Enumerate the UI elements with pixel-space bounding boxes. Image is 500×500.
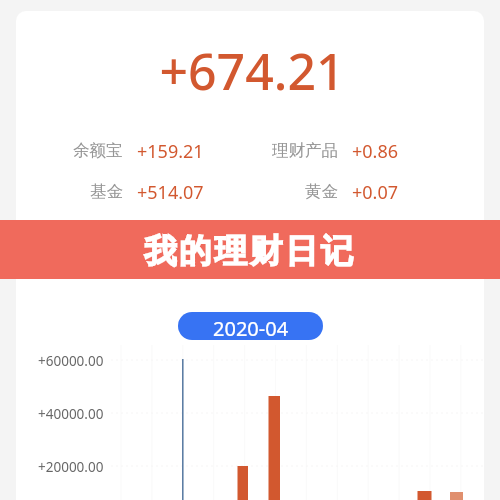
staticText: +674.21 xyxy=(159,37,345,101)
button[interactable]: 余额宝 xyxy=(60,137,205,165)
staticText: +0.86 xyxy=(352,139,399,164)
staticText: 我的理财日记 xyxy=(144,231,356,272)
staticText: 基金 xyxy=(90,181,123,202)
button[interactable]: 理财产品 xyxy=(258,137,406,165)
staticText: +20000.00 xyxy=(38,458,104,476)
button[interactable]: 我的理财日记 xyxy=(0,220,500,279)
button[interactable]: 黄金 xyxy=(258,178,406,206)
staticText: 黄金 xyxy=(305,181,338,202)
staticText: +0.07 xyxy=(352,180,399,205)
staticText: +514.07 xyxy=(137,180,204,205)
staticText: +159.21 xyxy=(137,139,204,164)
button[interactable]: +674.21 xyxy=(0,36,500,100)
button[interactable]: 2020-04 xyxy=(178,312,323,340)
staticText: 理财产品 xyxy=(272,140,338,161)
staticText: 余额宝 xyxy=(73,140,123,161)
staticText: +60000.00 xyxy=(38,352,104,370)
button[interactable]: 基金 xyxy=(60,178,205,206)
staticText: 2020-04 xyxy=(213,315,289,340)
staticText: +40000.00 xyxy=(38,405,104,423)
other: Monthly income bar chart xyxy=(0,0,500,500)
